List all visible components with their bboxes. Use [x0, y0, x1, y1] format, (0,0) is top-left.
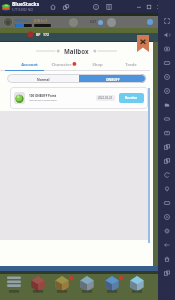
- staticText: Account: [21, 62, 38, 68]
- button[interactable]: Trade: [114, 60, 148, 70]
- button[interactable]: Eco mode: [158, 126, 175, 140]
- button[interactable]: Maximize: [144, 1, 154, 12]
- button[interactable]: Character: [46, 60, 80, 70]
- button[interactable]: Quest wheel: [69, 18, 78, 27]
- button[interactable]: Shop: [99, 275, 124, 297]
- button[interactable]: Screenshot: [158, 42, 175, 56]
- button[interactable]: Shop: [80, 60, 114, 70]
- button[interactable]: Copy to PC: [158, 154, 175, 168]
- button[interactable]: Forge: [74, 275, 99, 297]
- button[interactable]: ONBUFF: [79, 74, 146, 83]
- staticText: Shop: [92, 62, 103, 68]
- button[interactable]: Multi instance manager: [61, 1, 71, 12]
- staticText: Receive: [125, 96, 138, 100]
- button[interactable]: Back: [158, 238, 175, 252]
- button[interactable]: Macro recorder: [158, 168, 175, 182]
- button[interactable]: Profile: [2, 16, 14, 28]
- button[interactable]: Home: [158, 252, 175, 266]
- staticText: 5.7710.5002 N32: [12, 8, 34, 12]
- button[interactable]: Receive: [119, 93, 144, 103]
- button[interactable]: Multi-instance: [158, 140, 175, 154]
- button[interactable]: Game controls: [158, 112, 175, 126]
- staticText: 2022-03-23: [98, 96, 113, 100]
- staticText: UST: [90, 20, 97, 24]
- staticText: Trade: [125, 62, 137, 68]
- button[interactable]: Media manager: [158, 70, 175, 84]
- staticText: Normal: [37, 77, 50, 81]
- button[interactable]: Operation history: [158, 210, 175, 224]
- button[interactable]: Home: [48, 1, 58, 12]
- staticText: Character: [51, 62, 72, 68]
- button[interactable]: Settings: [158, 224, 175, 238]
- button[interactable]: Pet: [107, 18, 116, 27]
- button[interactable]: Minimize: [134, 1, 144, 12]
- button[interactable]: Shake: [158, 98, 175, 112]
- button[interactable]: Mercenary: [2, 275, 26, 297]
- staticText: BlueStacks: [12, 1, 40, 8]
- button[interactable]: Store: [50, 275, 74, 297]
- button[interactable]: Help: [91, 1, 101, 12]
- staticText: JOB Lv.1: [34, 18, 48, 23]
- staticText: BASE Lv.1: [15, 18, 31, 23]
- button[interactable]: 100 ONBUFF Point: [10, 87, 148, 109]
- staticText: Mailbox: [64, 47, 89, 55]
- button[interactable]: Lab: [124, 275, 149, 297]
- button[interactable]: Normal: [7, 74, 79, 83]
- button[interactable]: Close: [154, 1, 164, 12]
- staticText: ONBUFF: [106, 77, 120, 81]
- button[interactable]: Full screen: [158, 14, 175, 28]
- button[interactable]: Script: [158, 182, 175, 196]
- staticText: BP 172: [36, 32, 49, 37]
- button[interactable]: Bank: [26, 275, 50, 297]
- button[interactable]: Recent apps: [158, 266, 175, 280]
- button[interactable]: Close: [137, 35, 149, 52]
- button[interactable]: Location: [158, 84, 175, 98]
- button[interactable]: Volume: [158, 28, 175, 42]
- button[interactable]: Record screen: [158, 56, 175, 70]
- button[interactable]: Account: [12, 60, 46, 70]
- button[interactable]: Disk clean-up: [158, 196, 175, 210]
- staticText: 100 ONBUFF Point: [29, 94, 56, 98]
- button[interactable]: Menu: [104, 1, 114, 12]
- staticText: Maintenance Compensation: [29, 99, 57, 102]
